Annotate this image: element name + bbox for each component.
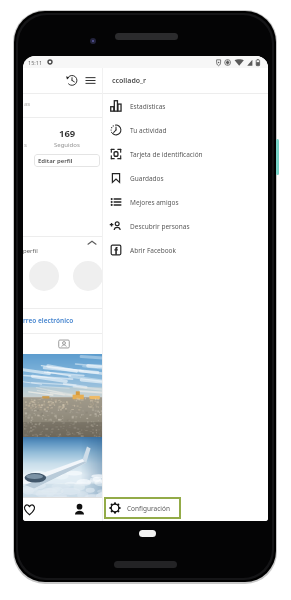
- button[interactable]: Estadísticas: [103, 94, 268, 118]
- staticText: ccollado_r: [112, 76, 147, 86]
- button[interactable]: Mejores amigos: [103, 190, 268, 214]
- button[interactable]: Guardados: [103, 166, 268, 190]
- button[interactable]: Me gusta: [23, 498, 42, 521]
- button[interactable]: Descubrir personas: [103, 214, 268, 238]
- staticText: 15:11: [28, 59, 43, 66]
- button[interactable]: Historial: [64, 72, 80, 88]
- staticText: Tarjeta de identificación: [130, 150, 203, 159]
- staticText: Descubrir personas: [130, 222, 190, 231]
- staticText: Abrir Facebook: [130, 246, 177, 255]
- staticText: as: [24, 100, 31, 108]
- staticText: rreo electrónico: [23, 316, 74, 325]
- button[interactable]: Abrir Facebook: [103, 238, 268, 262]
- button[interactable]: Editar perfil: [34, 154, 100, 167]
- button[interactable]: Tu actividad: [103, 118, 268, 142]
- button[interactable]: Configuración: [104, 497, 181, 519]
- staticText: Configuración: [127, 504, 170, 513]
- staticText: Editar perfil: [38, 157, 73, 165]
- button[interactable]: Perfil: [66, 498, 92, 521]
- staticText: Tu actividad: [130, 126, 167, 135]
- staticText: perfil: [23, 247, 38, 255]
- staticText: Guardados: [130, 174, 164, 183]
- staticText: 169: [59, 127, 76, 140]
- staticText: s: [24, 141, 27, 149]
- staticText: Estadísticas: [130, 102, 166, 111]
- staticText: Mejores amigos: [130, 198, 179, 207]
- button[interactable]: Menu: [82, 72, 98, 88]
- button[interactable]: Tarjeta de identificación: [103, 142, 268, 166]
- staticText: Seguidos: [54, 141, 80, 149]
